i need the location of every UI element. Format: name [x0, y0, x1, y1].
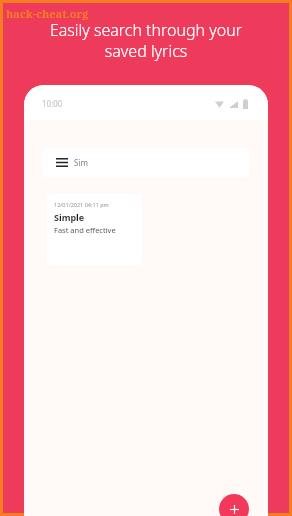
button[interactable]: Add lyrics: [219, 494, 249, 516]
button[interactable]: Sim: [43, 148, 249, 177]
button[interactable]: 12/01/2021 04:11 pm: [47, 194, 142, 265]
staticText: 10:00: [42, 98, 63, 109]
staticText: Sim: [74, 157, 88, 168]
staticText: 12/01/2021 04:11 pm: [54, 201, 109, 208]
staticText: Fast and effective: [54, 225, 116, 235]
staticText: hack-cheat.org: [6, 6, 89, 21]
staticText: Simple: [54, 211, 85, 223]
staticText: Easily search through your saved lyrics: [17, 19, 275, 62]
